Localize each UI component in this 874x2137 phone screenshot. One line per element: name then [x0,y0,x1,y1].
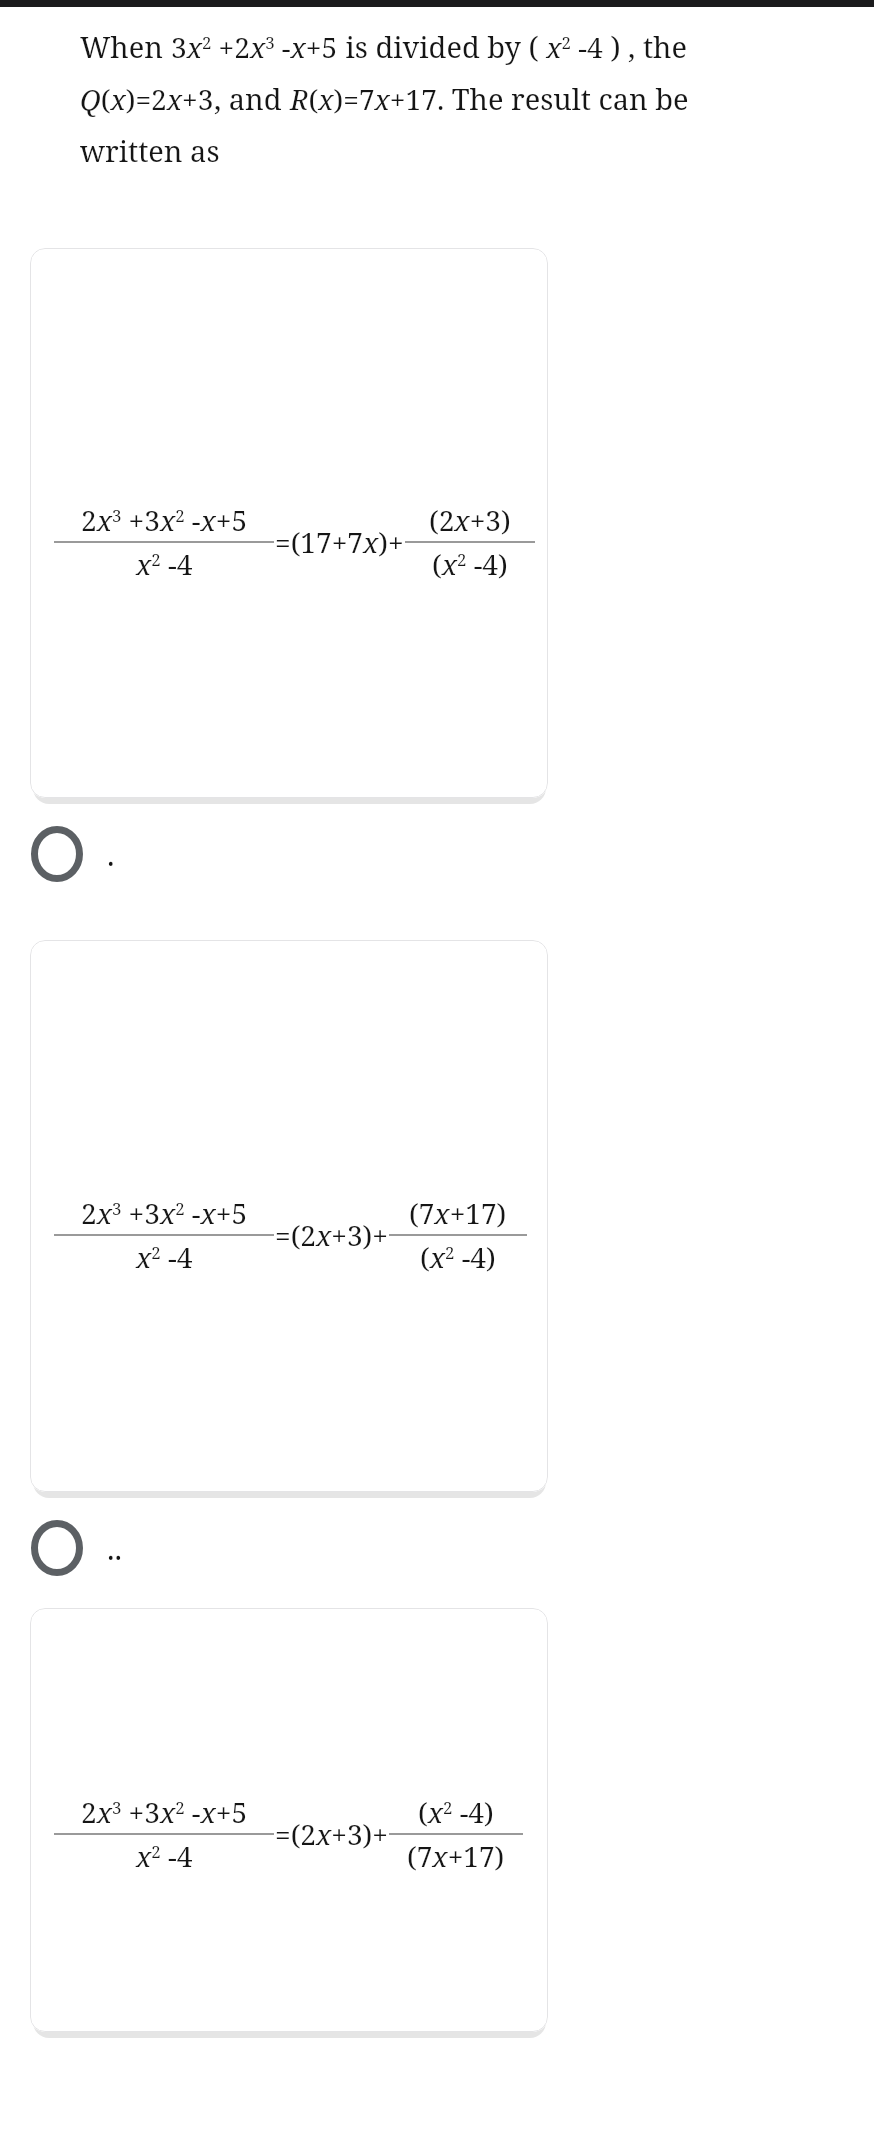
staticText: (7x+17) [409,1194,507,1232]
button[interactable]: Select second answer option [0,1512,874,1584]
other: Select first answer option [31,826,83,882]
staticText: 2x3 +3x2 -x+5 [81,1194,248,1232]
staticText: When [80,27,171,66]
button[interactable]: 2x3 +3x2 -x+5 [30,940,548,1492]
staticText: . The result can be [437,79,689,118]
staticText: R(x)=7x+17 [290,80,437,118]
staticText: =(2x+3)+ [275,1815,388,1853]
staticText: 3x2 +2x3 -x+5 [171,28,338,66]
staticText: (x2 -4) [418,1793,494,1831]
staticText: x2 -4 [136,545,193,583]
staticText: written as [80,131,220,170]
button[interactable]: 2x3 +3x2 -x+5 [30,1608,548,2032]
staticText: ) , the [603,27,688,66]
staticText: (x2 -4) [432,545,508,583]
other: Select second answer option [31,1520,83,1576]
staticText: x2 -4 [136,1238,193,1276]
staticText: . [107,834,115,875]
staticText: =(2x+3)+ [275,1216,388,1254]
staticText: , and [214,79,290,118]
staticText: (7x+17) [407,1837,505,1875]
staticText: x2 -4 [539,28,603,66]
staticText: (2x+3) [429,501,511,539]
button[interactable]: 2x3 +3x2 -x+5 [30,248,548,798]
button[interactable]: Select first answer option [0,818,874,890]
staticText: .. [107,1528,122,1569]
staticText: Q(x)=2x+3 [80,80,214,118]
staticText: 2x3 +3x2 -x+5 [81,501,248,539]
staticText: 2x3 +3x2 -x+5 [81,1793,248,1831]
staticText: (x2 -4) [420,1238,496,1276]
staticText: x2 -4 [136,1837,193,1875]
staticText: is divided by ( [338,27,539,66]
staticText: =(17+7x)+ [275,523,404,561]
